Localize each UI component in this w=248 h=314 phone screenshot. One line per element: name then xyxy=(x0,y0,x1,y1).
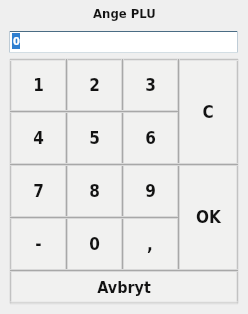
button[interactable]: Clear xyxy=(178,59,238,164)
button[interactable]: Avbryt xyxy=(10,270,238,304)
button[interactable]: 4 xyxy=(10,111,66,164)
button[interactable]: Minus xyxy=(10,217,66,270)
button[interactable]: 3 xyxy=(122,59,178,111)
button[interactable]: 5 xyxy=(66,111,122,164)
staticText: 1 xyxy=(33,75,44,95)
staticText: Ange PLU xyxy=(93,6,156,21)
staticText: , xyxy=(147,234,153,254)
staticText: 0 xyxy=(89,234,100,254)
staticText: C xyxy=(202,102,214,122)
button[interactable]: PLU input field xyxy=(9,31,238,53)
staticText: 0 xyxy=(13,35,20,48)
staticText: 8 xyxy=(89,181,100,201)
button[interactable]: OK xyxy=(178,164,238,270)
button[interactable]: 1 xyxy=(10,59,66,111)
staticText: 4 xyxy=(33,128,44,148)
button[interactable]: 8 xyxy=(66,164,122,217)
button[interactable]: 2 xyxy=(66,59,122,111)
staticText: 2 xyxy=(89,75,100,95)
button[interactable]: Decimal comma xyxy=(122,217,178,270)
button[interactable]: 9 xyxy=(122,164,178,217)
staticText: Avbryt xyxy=(97,278,151,297)
button[interactable]: 0 xyxy=(66,217,122,270)
staticText: 9 xyxy=(145,181,156,201)
button[interactable]: 7 xyxy=(10,164,66,217)
staticText: 5 xyxy=(89,128,100,148)
staticText: 7 xyxy=(33,181,44,201)
button[interactable]: 6 xyxy=(122,111,178,164)
staticText: 6 xyxy=(145,128,156,148)
staticText: OK xyxy=(196,207,221,227)
staticText: 3 xyxy=(145,75,156,95)
staticText: - xyxy=(35,234,42,254)
